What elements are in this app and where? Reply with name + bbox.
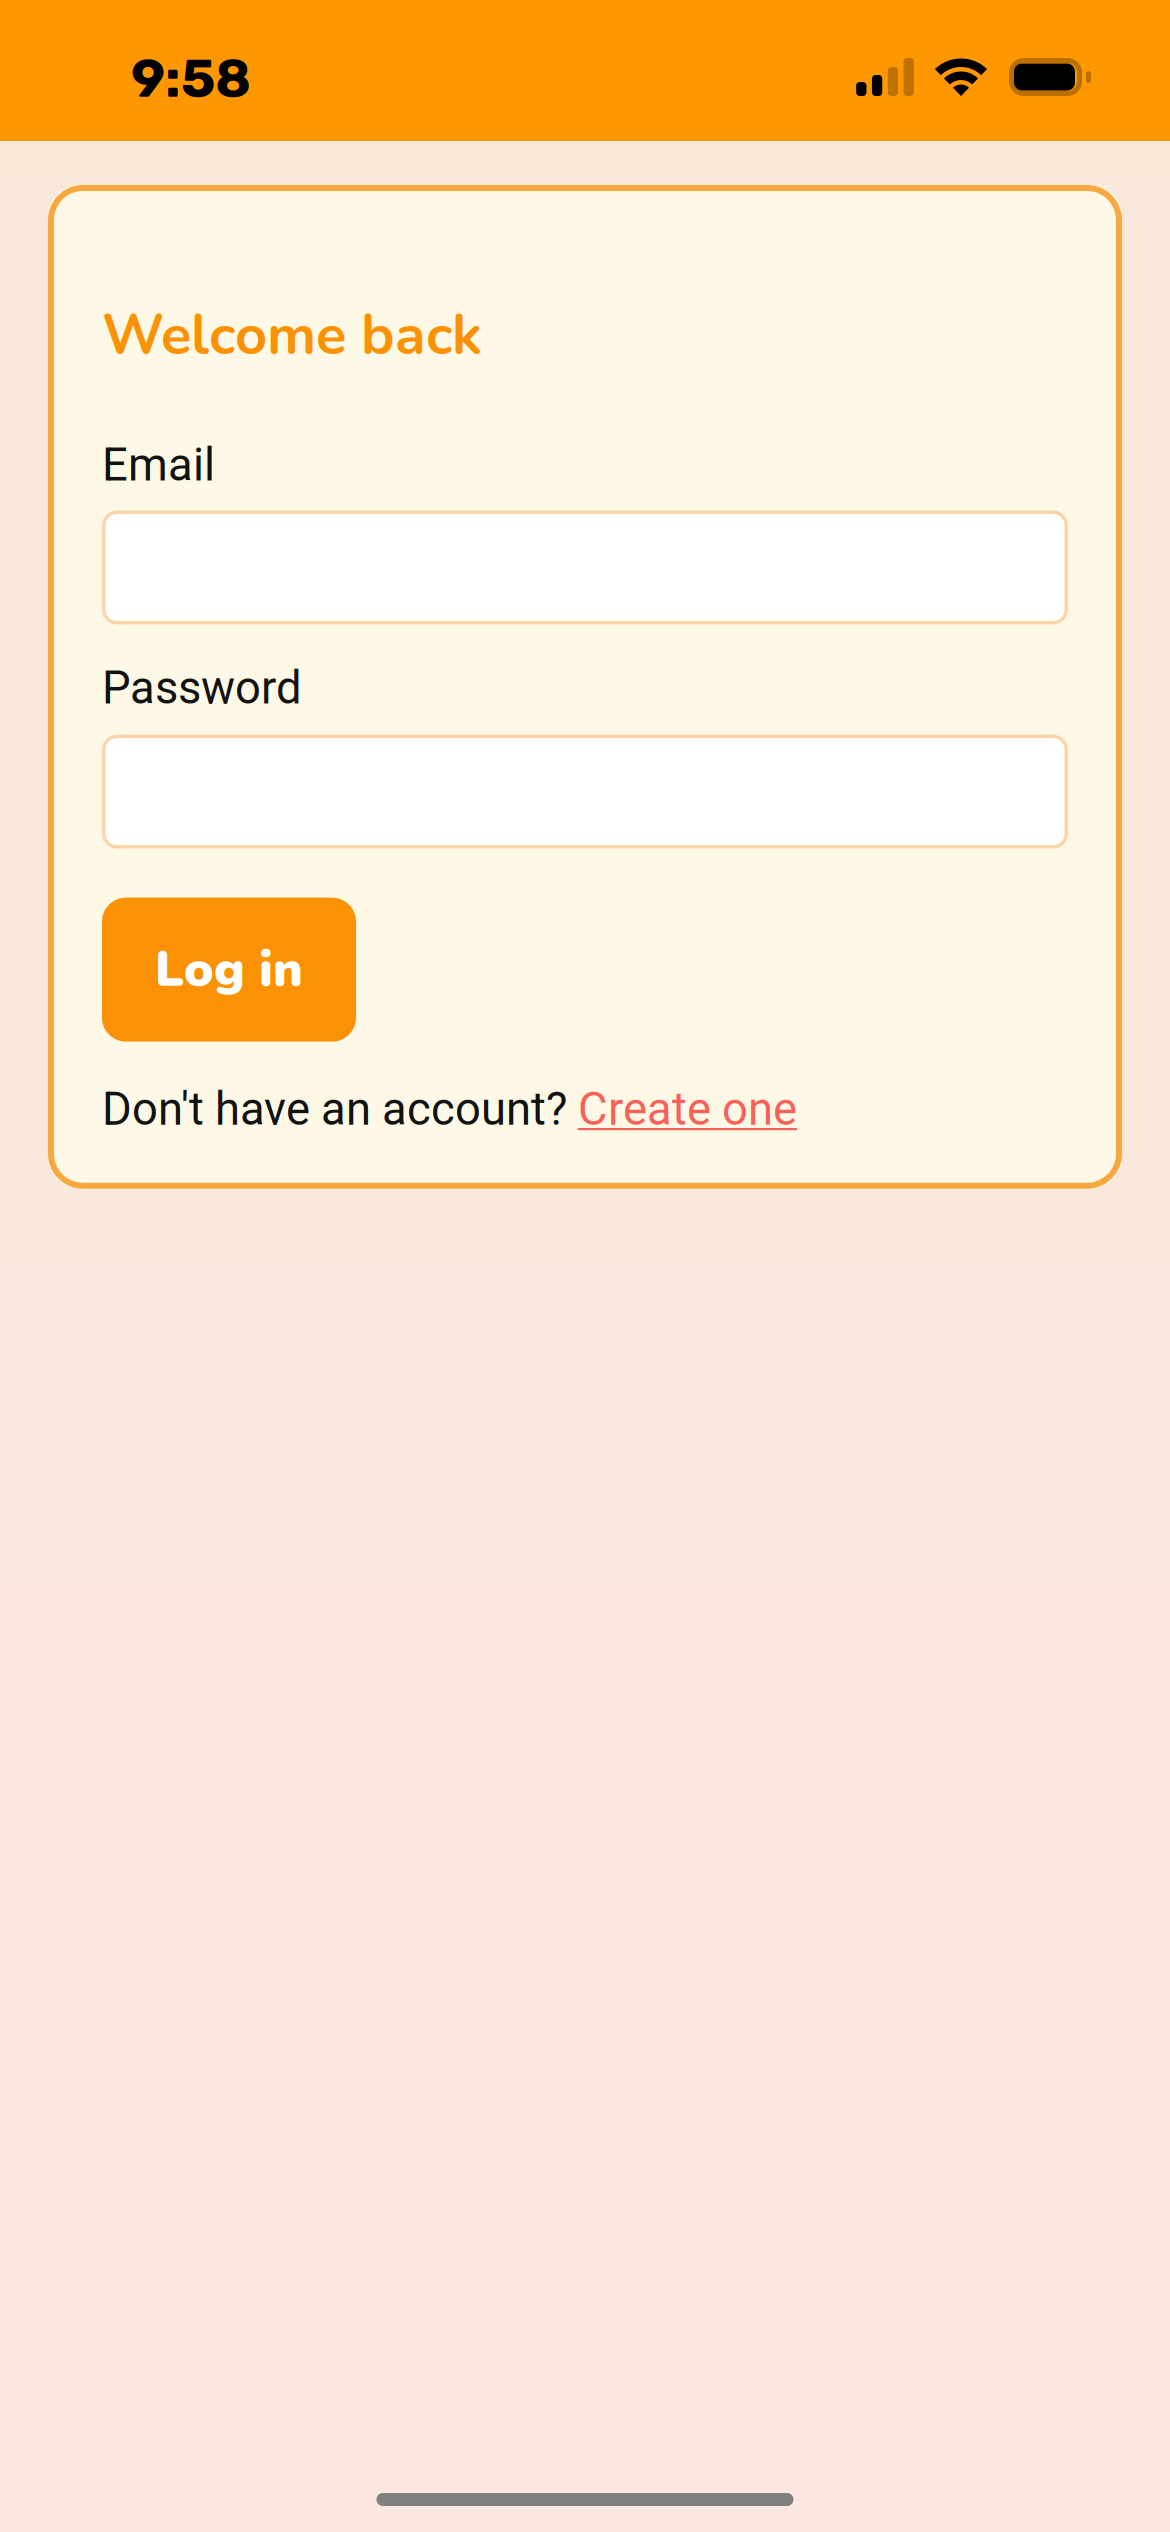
staticText: Don't have an account? xyxy=(102,1083,578,1136)
staticText: Log in xyxy=(155,936,303,1003)
staticText: 9:58 xyxy=(131,47,251,110)
button[interactable]: Log in xyxy=(102,898,356,1042)
staticText: Create one xyxy=(578,1083,797,1136)
staticText: Password xyxy=(102,661,302,715)
button[interactable]: Create one xyxy=(578,1083,797,1136)
staticText: Email xyxy=(102,438,215,491)
staticText: Welcome back xyxy=(102,297,482,373)
